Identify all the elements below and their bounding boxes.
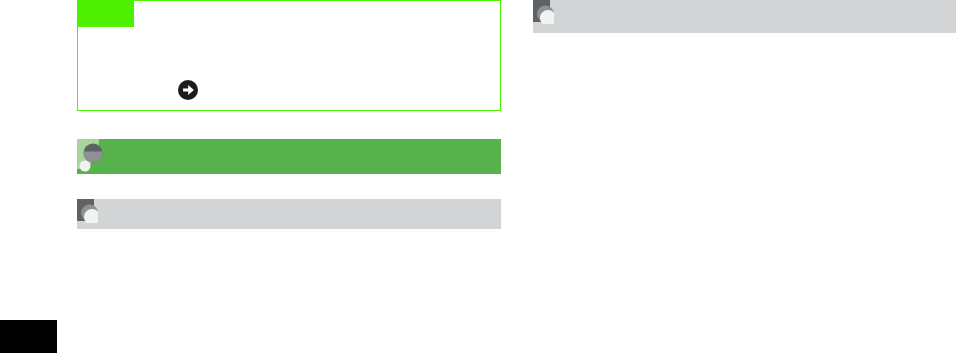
button[interactable] xyxy=(533,0,956,33)
button[interactable] xyxy=(77,199,501,229)
button[interactable]: Continue xyxy=(178,80,198,100)
button[interactable]: Continue xyxy=(77,0,501,111)
button[interactable] xyxy=(77,139,501,174)
